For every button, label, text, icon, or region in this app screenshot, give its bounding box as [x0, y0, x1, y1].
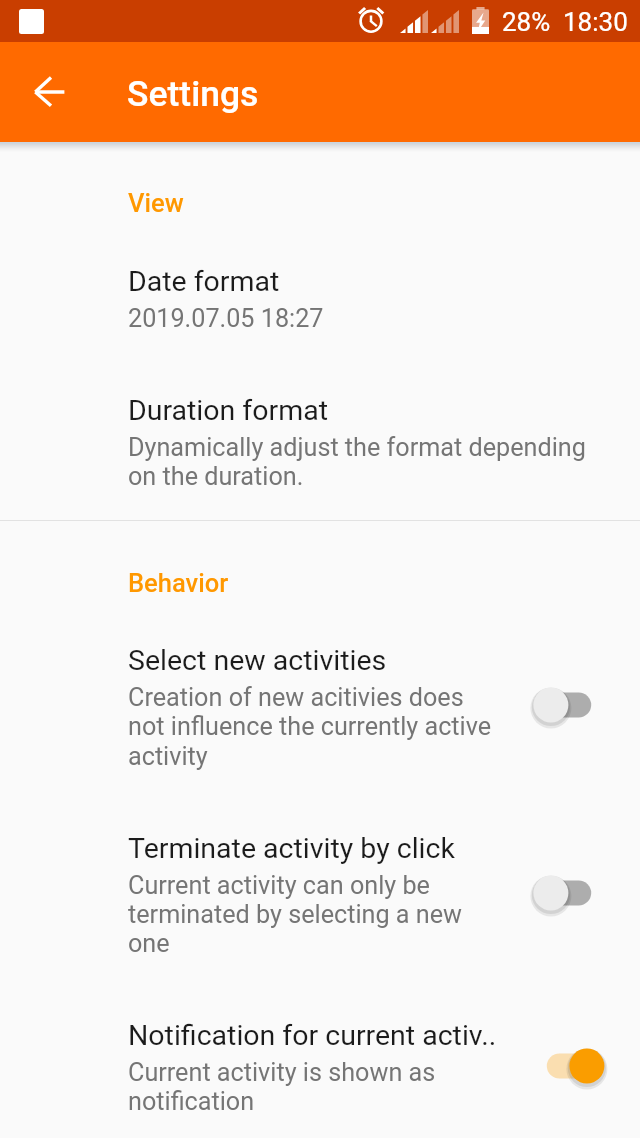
- staticText: activity: [128, 742, 208, 772]
- staticText: on the duration.: [128, 462, 304, 492]
- staticText: Date format: [128, 265, 280, 298]
- button[interactable]: Switch off: [527, 867, 611, 919]
- staticText: terminated by selecting a new: [128, 900, 463, 930]
- staticText: 18:30: [563, 7, 628, 37]
- staticText: Terminate activity by click: [128, 832, 455, 865]
- staticText: Behavior: [128, 568, 229, 598]
- staticText: notification: [128, 1087, 255, 1117]
- staticText: Select new activities: [128, 644, 387, 677]
- button[interactable]: Date format: [0, 251, 640, 343]
- staticText: Duration format: [128, 394, 328, 427]
- staticText: not influence the currently active: [128, 712, 492, 742]
- button[interactable]: Back: [22, 64, 78, 120]
- button[interactable]: Switch off: [527, 679, 611, 731]
- staticText: View: [128, 188, 184, 218]
- button[interactable]: Terminate activity by click: [0, 818, 640, 968]
- staticText: 2019.07.05 18:27: [128, 304, 324, 334]
- staticText: Settings: [127, 73, 259, 115]
- button[interactable]: Switch on: [527, 1040, 611, 1092]
- staticText: Notification for current activ..: [128, 1019, 497, 1052]
- staticText: Current activity can only be: [128, 871, 430, 901]
- button[interactable]: Select new activities: [0, 630, 640, 781]
- staticText: 28%: [502, 7, 551, 37]
- staticText: one: [128, 929, 170, 959]
- button[interactable]: Duration format: [0, 380, 640, 501]
- staticText: Current activity is shown as: [128, 1058, 436, 1088]
- button[interactable]: Notification for current activ..: [0, 1005, 640, 1126]
- staticText: Dynamically adjust the format depending: [128, 433, 586, 463]
- staticText: Creation of new acitivies does: [128, 683, 464, 713]
